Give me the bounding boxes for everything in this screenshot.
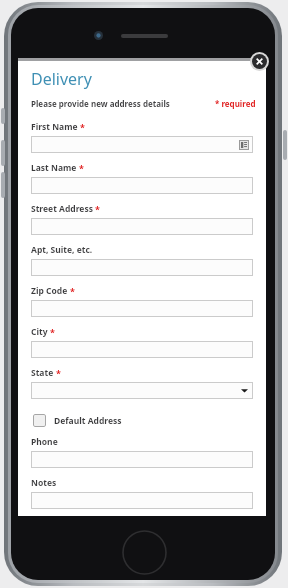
staticText: * required (215, 98, 256, 109)
button[interactable]: Pick from contacts (31, 136, 253, 153)
staticText: * (79, 162, 84, 174)
button[interactable] (31, 341, 253, 358)
button[interactable] (31, 382, 253, 399)
button[interactable] (31, 300, 253, 317)
button[interactable]: Close (252, 54, 267, 69)
button[interactable] (31, 259, 253, 276)
button[interactable] (31, 218, 253, 235)
staticText: * (80, 121, 85, 133)
staticText: Please provide new address details (31, 98, 170, 109)
staticText: Delivery (31, 68, 92, 90)
staticText: State (31, 367, 54, 379)
staticText: Zip Code (31, 285, 68, 297)
staticText: * (56, 367, 61, 379)
staticText: City (31, 326, 48, 338)
staticText: * (95, 203, 100, 215)
staticText: Apt, Suite, etc. (31, 244, 93, 256)
staticText: * (70, 285, 75, 297)
staticText: Street Address (31, 203, 93, 215)
staticText: * (50, 326, 55, 338)
staticText: Phone (31, 436, 58, 448)
button[interactable] (31, 492, 253, 509)
staticText: Last Name (31, 162, 77, 174)
staticText: Default Address (54, 415, 122, 427)
button[interactable]: Default Address (31, 412, 124, 429)
button[interactable] (31, 451, 253, 468)
staticText: Notes (31, 477, 57, 489)
button[interactable] (31, 177, 253, 194)
staticText: First Name (31, 121, 78, 133)
other: Pick from contacts (239, 140, 249, 150)
